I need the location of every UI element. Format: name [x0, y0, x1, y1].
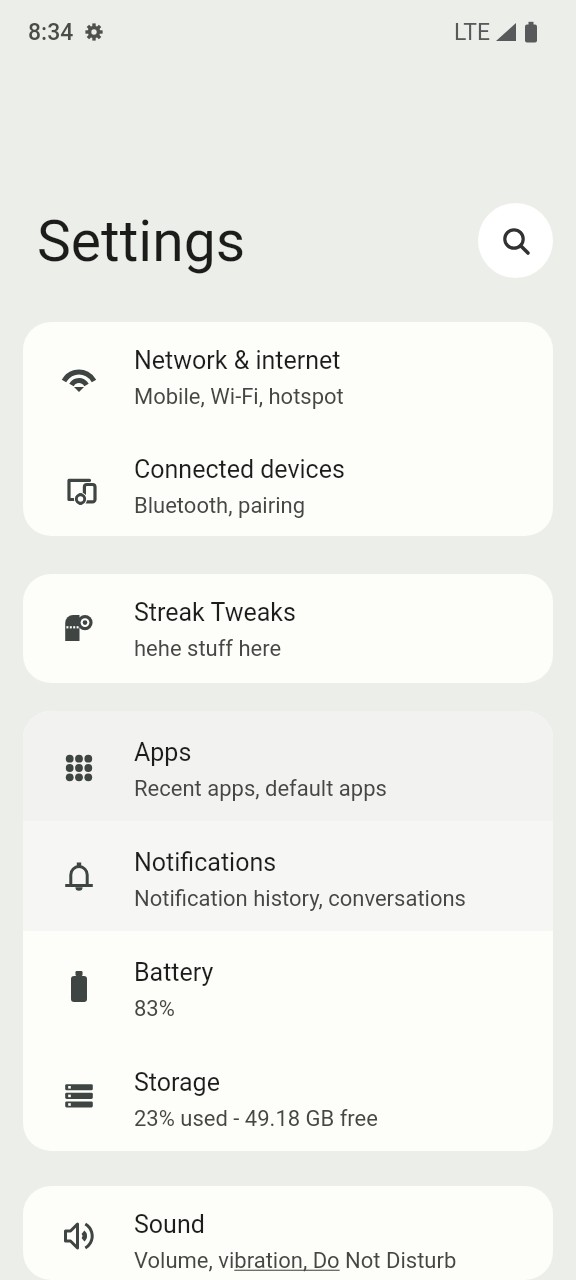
staticText: 23% used - 49.18 GB free	[134, 1106, 378, 1132]
staticText: Mobile, Wi-Fi, hotspot	[134, 384, 344, 410]
staticText: Notifications	[134, 848, 277, 877]
button[interactable]: Connected devices	[23, 429, 553, 536]
staticText: Apps	[134, 738, 192, 767]
staticText: Storage	[134, 1068, 220, 1097]
button[interactable]: Notifications	[23, 821, 553, 931]
button[interactable]: Network & internet	[23, 322, 553, 429]
staticText: Battery	[134, 958, 214, 987]
staticText: Volume, vibration, Do Not Disturb	[134, 1248, 457, 1274]
staticText: Network & internet	[134, 346, 341, 375]
button[interactable]: Streak Tweaks	[23, 574, 553, 683]
button[interactable]: Storage	[23, 1041, 553, 1151]
staticText: LTE	[454, 19, 491, 46]
button[interactable]	[478, 203, 553, 278]
staticText: 83%	[134, 996, 175, 1022]
staticText: 8:34	[28, 19, 74, 46]
button[interactable]: Battery	[23, 931, 553, 1041]
button[interactable]: Apps	[23, 711, 553, 821]
staticText: Streak Tweaks	[134, 598, 296, 627]
staticText: Recent apps, default apps	[134, 776, 387, 802]
staticText: Bluetooth, pairing	[134, 493, 306, 519]
button[interactable]: Sound	[23, 1186, 553, 1280]
staticText: Connected devices	[134, 455, 345, 484]
staticText: Settings	[37, 208, 246, 275]
staticText: Notification history, conversations	[134, 886, 466, 912]
staticText: hehe stuff here	[134, 636, 282, 662]
staticText: Sound	[134, 1210, 205, 1239]
